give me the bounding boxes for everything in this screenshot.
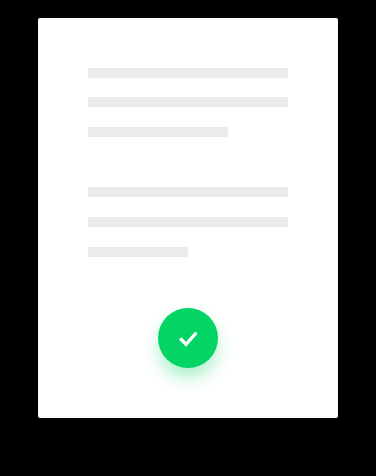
button[interactable]: Confirm [158, 308, 218, 368]
